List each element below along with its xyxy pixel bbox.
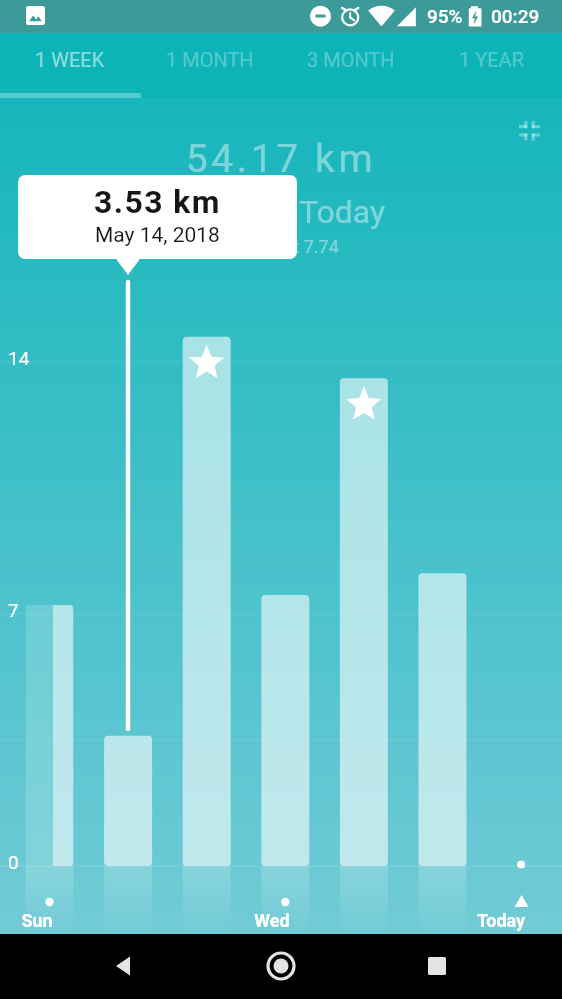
staticText: 1 MONTH bbox=[166, 48, 254, 71]
button[interactable]: 1 WEEK bbox=[0, 33, 140, 98]
button[interactable]: 3 MONTH bbox=[280, 33, 421, 98]
button[interactable]: 1 MONTH bbox=[140, 33, 280, 98]
staticText: 1 YEAR bbox=[459, 48, 524, 71]
staticText: 54.17 km bbox=[0, 136, 562, 182]
staticText: Today bbox=[441, 910, 561, 931]
staticText: Sun bbox=[0, 910, 97, 931]
button[interactable]: 3.53 km bbox=[18, 175, 297, 259]
button[interactable]: Back bbox=[107, 949, 141, 983]
staticText: 3.53 km Today bbox=[0, 193, 562, 231]
button[interactable]: Collapse bbox=[511, 112, 548, 149]
staticText: 0 bbox=[8, 851, 19, 873]
staticText: May 14, 2018 bbox=[95, 223, 220, 248]
staticText: 3.53 km bbox=[94, 183, 221, 221]
button[interactable]: 1 YEAR bbox=[421, 33, 562, 98]
staticText: 95% bbox=[427, 5, 463, 27]
staticText: 7 bbox=[8, 599, 19, 621]
staticText: Wed bbox=[212, 910, 332, 931]
other: Screenshot bbox=[26, 6, 45, 25]
button[interactable]: Recents bbox=[420, 949, 454, 983]
staticText: 00:29 bbox=[491, 5, 540, 27]
staticText: 3 MONTH bbox=[307, 48, 395, 71]
button[interactable]: Home bbox=[264, 949, 298, 983]
staticText: 1 WEEK bbox=[35, 48, 105, 71]
staticText: Daily avg: 7.74 bbox=[0, 236, 562, 257]
staticText: 14 bbox=[8, 347, 30, 369]
